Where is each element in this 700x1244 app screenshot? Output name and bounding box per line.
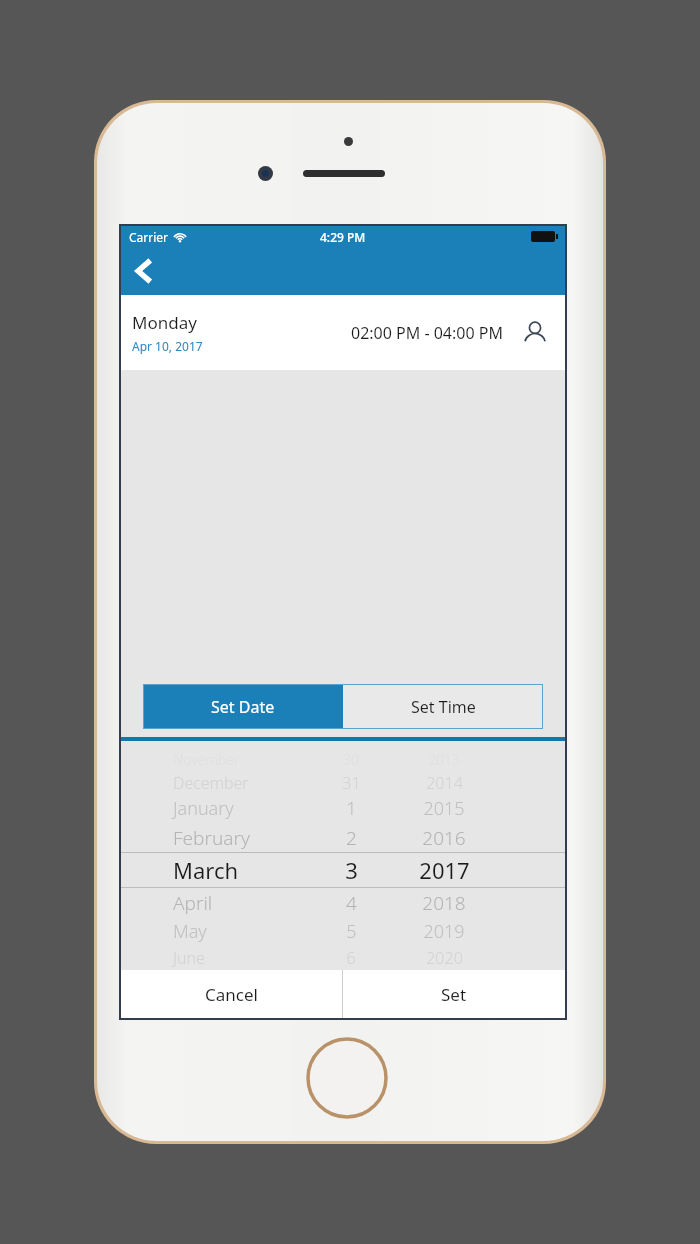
button[interactable]: Set Time xyxy=(343,684,543,729)
staticText: 02:00 PM - 04:00 PM xyxy=(351,322,503,344)
staticText: March xyxy=(173,855,239,885)
staticText: Set Time xyxy=(411,696,476,718)
staticText: 2015 xyxy=(423,796,465,821)
button[interactable]: Monday xyxy=(121,295,565,370)
staticText: Apr 10, 2017 xyxy=(132,338,203,354)
staticText: 2014 xyxy=(426,772,463,794)
staticText: 4 xyxy=(346,890,357,916)
button[interactable]: Cancel xyxy=(121,970,342,1018)
staticText: 1 xyxy=(346,796,357,821)
staticText: December xyxy=(173,772,249,794)
staticText: 2019 xyxy=(423,919,465,944)
staticText: 6 xyxy=(346,947,356,969)
staticText: 5 xyxy=(346,919,357,944)
button[interactable]: Set xyxy=(343,970,565,1018)
staticText: Set Date xyxy=(211,696,275,718)
staticText: 3 xyxy=(345,855,358,885)
staticText: Monday xyxy=(132,311,197,334)
staticText: 2018 xyxy=(422,890,466,916)
staticText: 2017 xyxy=(419,855,470,885)
button[interactable]: Back xyxy=(121,248,167,294)
staticText: May xyxy=(173,919,207,944)
button[interactable]: Attendee xyxy=(517,315,553,351)
staticText: 4:29 PM xyxy=(320,229,366,245)
staticText: April xyxy=(173,890,213,916)
staticText: 2016 xyxy=(422,825,466,851)
staticText: 31 xyxy=(342,772,361,794)
button[interactable]: November xyxy=(121,741,565,970)
staticText: Set xyxy=(441,983,467,1006)
staticText: 2020 xyxy=(426,947,463,969)
button[interactable]: Set Date xyxy=(143,684,343,729)
staticText: June xyxy=(173,947,205,969)
staticText: February xyxy=(173,825,250,851)
staticText: 2 xyxy=(346,825,357,851)
staticText: Cancel xyxy=(205,983,258,1006)
staticText: January xyxy=(173,796,234,821)
staticText: Carrier xyxy=(129,229,169,245)
